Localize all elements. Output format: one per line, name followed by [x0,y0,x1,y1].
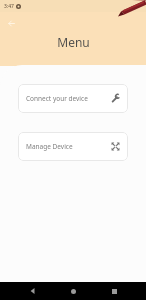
button[interactable]: Back [4,16,18,30]
button[interactable]: Manage Device [18,132,128,161]
button[interactable]: Recent apps [106,283,122,299]
staticText: Connect your device [26,94,111,103]
staticText: Menu [57,34,90,50]
button[interactable]: Back [25,283,41,299]
staticText: 3:47 [4,3,14,10]
button[interactable]: Connect your device [18,84,128,113]
button[interactable]: Home [65,283,81,299]
staticText: Manage Device [26,142,111,151]
